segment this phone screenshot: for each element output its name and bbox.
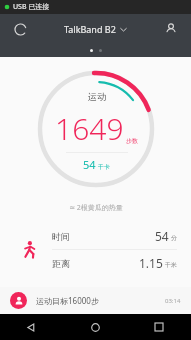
staticText: 运动: [88, 91, 106, 102]
staticText: 03:14: [165, 297, 181, 305]
button[interactable]: 运动目标16000步: [0, 287, 191, 314]
staticText: 54: [83, 157, 96, 172]
staticText: 54: [155, 228, 169, 244]
button[interactable]: Home: [63, 314, 127, 340]
staticText: 千米: [165, 261, 177, 269]
staticText: TalkBand B2: [64, 23, 116, 35]
button[interactable]: Sync: [10, 19, 30, 39]
staticText: USB 已连接: [13, 2, 50, 12]
staticText: ≈ 2根黄瓜的热量: [69, 203, 123, 213]
staticText: 时间: [52, 231, 70, 242]
button[interactable]: 距离: [52, 250, 177, 276]
button[interactable]: Back: [0, 314, 63, 340]
staticText: 步数: [126, 137, 138, 145]
button[interactable]: Recents: [127, 314, 191, 340]
staticText: 1.15: [139, 255, 163, 271]
staticText: 距离: [52, 258, 70, 269]
button[interactable]: Profile: [161, 19, 181, 39]
staticText: 1649: [55, 108, 124, 149]
staticText: 千卡: [98, 163, 110, 171]
button[interactable]: TalkBand B2: [64, 23, 127, 35]
staticText: 分: [171, 234, 177, 242]
button[interactable]: 时间: [52, 223, 177, 249]
staticText: 运动目标16000步: [36, 295, 99, 306]
